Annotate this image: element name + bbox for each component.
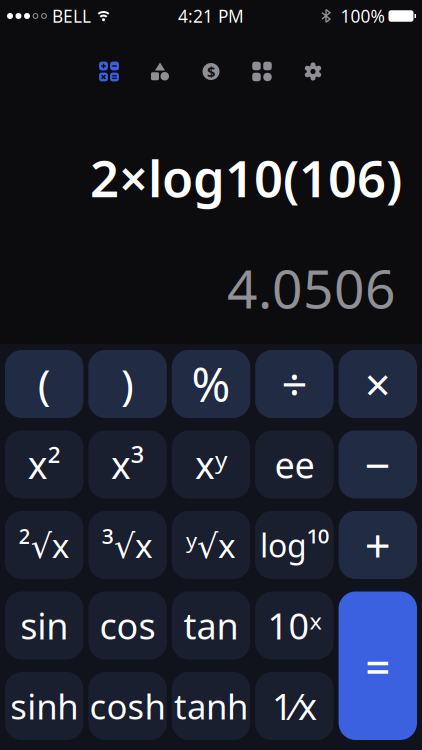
staticText: xʸ (195, 440, 227, 489)
staticText: 4.0506 (227, 252, 396, 323)
staticText: ( (38, 356, 51, 412)
button[interactable]: Calculator (83, 51, 134, 91)
staticText: − (365, 434, 391, 495)
staticText: = (365, 636, 390, 695)
button[interactable]: cos (88, 591, 167, 659)
staticText: ÷ (281, 354, 307, 414)
staticText: $ (207, 62, 215, 81)
staticText: x³ (111, 440, 144, 489)
button[interactable]: xʸ (172, 430, 250, 498)
button[interactable]: 1⁄x (255, 672, 334, 740)
button[interactable]: ʸ√x (172, 511, 250, 579)
staticText: × (365, 354, 391, 414)
button[interactable]: Settings (287, 51, 338, 91)
button[interactable]: Currency (185, 51, 236, 91)
staticText: 1⁄x (272, 682, 317, 730)
button[interactable]: cosh (88, 672, 167, 740)
button[interactable]: sin (5, 591, 83, 659)
button[interactable]: tanh (172, 672, 250, 740)
button[interactable]: ³√x (88, 511, 167, 579)
staticText: tan (183, 602, 238, 649)
staticText: ee (274, 441, 314, 488)
button[interactable]: x³ (88, 430, 167, 498)
button[interactable]: sinh (5, 672, 83, 740)
button[interactable]: ) (88, 350, 167, 418)
staticText: ²√x (19, 523, 70, 567)
button[interactable]: Apps (236, 51, 287, 91)
staticText: cosh (90, 683, 166, 729)
button[interactable]: ÷ (255, 350, 334, 418)
button[interactable]: ee (255, 430, 334, 498)
staticText: sinh (10, 683, 78, 729)
button[interactable]: × (339, 350, 417, 418)
staticText: log¹⁰ (260, 524, 329, 566)
button[interactable]: Shapes (134, 51, 185, 91)
button[interactable]: ( (5, 350, 83, 418)
button[interactable]: x² (5, 430, 83, 498)
staticText: tanh (174, 683, 248, 729)
staticText: 2×log10(106) (90, 144, 402, 211)
staticText: ʸ√x (186, 523, 236, 567)
button[interactable]: = (339, 591, 417, 740)
staticText: + (365, 515, 391, 575)
staticText: 4:21 PM (178, 4, 244, 27)
button[interactable]: tan (172, 591, 250, 659)
staticText: ³√x (102, 523, 153, 567)
staticText: 100% (340, 4, 384, 27)
staticText: cos (100, 602, 156, 649)
button[interactable]: % (172, 350, 250, 418)
staticText: sin (20, 602, 68, 649)
staticText: ) (121, 356, 134, 412)
button[interactable]: log¹⁰ (255, 511, 334, 579)
staticText: 10ˣ (267, 602, 321, 649)
button[interactable]: + (339, 511, 417, 579)
staticText: % (191, 353, 230, 415)
button[interactable]: 10ˣ (255, 591, 334, 659)
staticText: x² (28, 440, 61, 489)
staticText: BELL (52, 4, 91, 27)
button[interactable]: − (339, 430, 417, 498)
button[interactable]: ²√x (5, 511, 83, 579)
